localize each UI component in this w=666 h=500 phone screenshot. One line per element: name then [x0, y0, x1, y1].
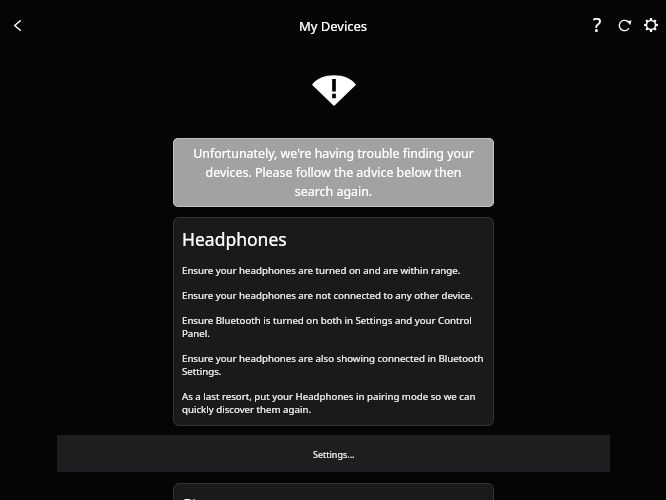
- staticText: Unfortunately, we're having trouble find…: [191, 145, 476, 200]
- button[interactable]: Stereo: [173, 483, 494, 500]
- staticText: Ensure your headphones are not connected…: [182, 289, 473, 302]
- button[interactable]: Help: [584, 12, 610, 38]
- staticText: As a last resort, put your Headphones in…: [182, 390, 486, 416]
- staticText: Headphones: [182, 227, 287, 251]
- staticText: My Devices: [0, 17, 666, 35]
- staticText: Settings...: [313, 448, 355, 460]
- button[interactable]: Back: [0, 8, 34, 42]
- button[interactable]: Refresh: [611, 12, 637, 38]
- staticText: Ensure your headphones are also showing …: [182, 352, 486, 378]
- staticText: Ensure your headphones are turned on and…: [182, 264, 461, 277]
- button[interactable]: Settings...: [57, 435, 610, 472]
- staticText: Ensure Bluetooth is turned on both in Se…: [182, 314, 486, 340]
- button[interactable]: Settings: [638, 12, 664, 38]
- button[interactable]: Headphones: [173, 217, 494, 426]
- staticText: Stereo: [182, 493, 236, 500]
- staticText: ?: [593, 12, 602, 38]
